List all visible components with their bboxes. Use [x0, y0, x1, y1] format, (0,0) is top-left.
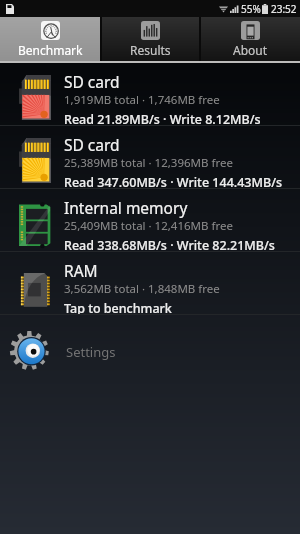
button[interactable]: RAM: [0, 252, 300, 315]
staticText: RAM: [64, 260, 98, 281]
staticText: 25,389MB total · 12,396MB free: [64, 155, 233, 171]
button[interactable]: Internal memory: [0, 189, 300, 252]
button[interactable]: Benchmark: [0, 17, 100, 61]
button[interactable]: About: [200, 17, 300, 61]
staticText: Benchmark: [18, 42, 83, 58]
staticText: 55%: [241, 2, 261, 16]
button[interactable]: Settings: [0, 315, 300, 371]
staticText: Internal memory: [64, 197, 188, 218]
staticText: 1,919MB total · 1,746MB free: [64, 92, 220, 108]
button[interactable]: SD card: [0, 126, 300, 189]
button[interactable]: Results: [100, 17, 200, 61]
staticText: Read 347.60MB/s · Write 144.43MB/s: [64, 174, 283, 189]
staticText: SD card: [64, 71, 120, 92]
staticText: Settings: [66, 343, 116, 361]
staticText: About: [233, 42, 268, 58]
staticText: Read 338.68MB/s · Write 82.21MB/s: [64, 237, 275, 252]
staticText: SD card: [64, 134, 120, 155]
staticText: Results: [130, 42, 171, 58]
staticText: 3,562MB total · 1,848MB free: [64, 281, 220, 297]
staticText: 23:52: [271, 2, 297, 16]
button[interactable]: SD card: [0, 63, 300, 126]
staticText: Tap to benchmark: [64, 300, 172, 315]
staticText: 25,409MB total · 12,416MB free: [64, 218, 233, 234]
staticText: Read 21.89MB/s · Write 8.12MB/s: [64, 111, 261, 126]
